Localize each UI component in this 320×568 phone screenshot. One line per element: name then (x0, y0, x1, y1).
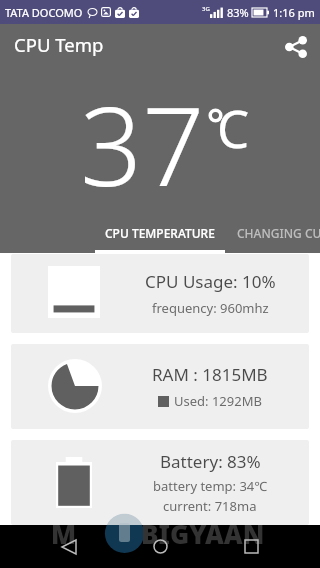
button[interactable]: CPU TEMPERATURE (95, 216, 225, 250)
button[interactable]: Battery: 83% (11, 440, 309, 525)
staticText: 1:16 pm (273, 5, 315, 20)
staticText: BIGYAAN (141, 516, 265, 551)
staticText: 37 (80, 69, 205, 217)
staticText: BIGYAAN (141, 516, 265, 551)
staticText: M (51, 516, 77, 551)
staticText: C (217, 93, 250, 162)
button[interactable]: Back (47, 525, 91, 568)
staticText: Battery: 83% (160, 450, 261, 473)
staticText: CPU TEMPERATURE (105, 225, 215, 241)
staticText: 3G (202, 5, 210, 13)
staticText: current: 718ma (163, 497, 257, 515)
staticText: CHANGING CURRENT (237, 225, 320, 241)
button[interactable]: CHANGING CURRENT (225, 216, 320, 250)
button[interactable]: Share (278, 31, 314, 63)
button[interactable]: RAM : 1815MB (11, 344, 309, 429)
staticText: RAM : 1815MB (152, 363, 268, 386)
button[interactable]: Recents (229, 525, 273, 568)
staticText: M (51, 516, 77, 551)
staticText: Used: 1292MB (174, 392, 262, 410)
staticText: CPU Temp (14, 32, 104, 57)
staticText: battery temp: 34℃ (153, 477, 268, 495)
button[interactable]: Home (138, 525, 182, 568)
button[interactable]: CPU Usage: 10% (11, 254, 309, 333)
staticText: TATA DOCOMO (5, 5, 83, 20)
staticText: 83% (227, 5, 249, 20)
staticText: frequency: 960mhz (152, 299, 269, 317)
staticText: CPU Usage: 10% (145, 270, 276, 293)
